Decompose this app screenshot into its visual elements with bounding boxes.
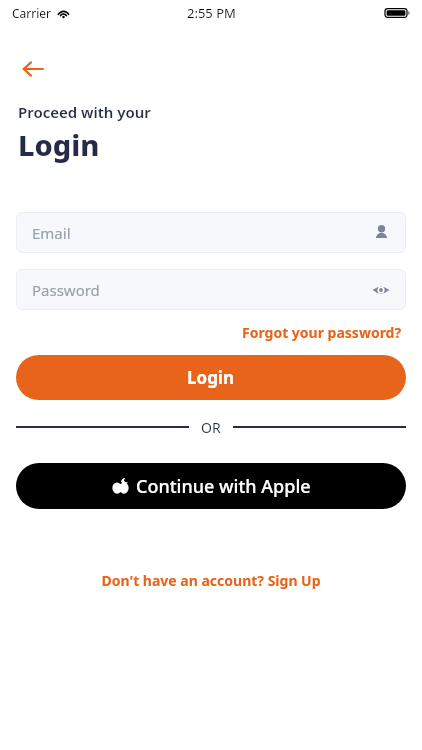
button[interactable]: Forgot your password?	[240, 320, 404, 345]
staticText: Don't have an account? Sign Up	[101, 571, 321, 590]
staticText: Continue with Apple	[136, 474, 311, 499]
staticText: Carrier	[12, 5, 52, 21]
button[interactable]: Back	[16, 52, 50, 86]
button[interactable]: Password	[16, 269, 406, 310]
staticText: Login	[18, 125, 100, 164]
staticText: OR	[201, 418, 221, 437]
staticText: Password	[32, 280, 372, 300]
button[interactable]: Login	[16, 355, 406, 400]
staticText: Proceed with your	[18, 102, 151, 122]
staticText: Login	[187, 366, 235, 389]
staticText: 2:55 PM	[187, 4, 236, 22]
button[interactable]: Continue with Apple	[16, 463, 406, 509]
button[interactable]: Email	[16, 212, 406, 253]
staticText: Email	[32, 223, 373, 243]
button[interactable]: Don't have an account? Sign Up	[97, 567, 325, 594]
staticText: Forgot your password?	[242, 323, 402, 342]
